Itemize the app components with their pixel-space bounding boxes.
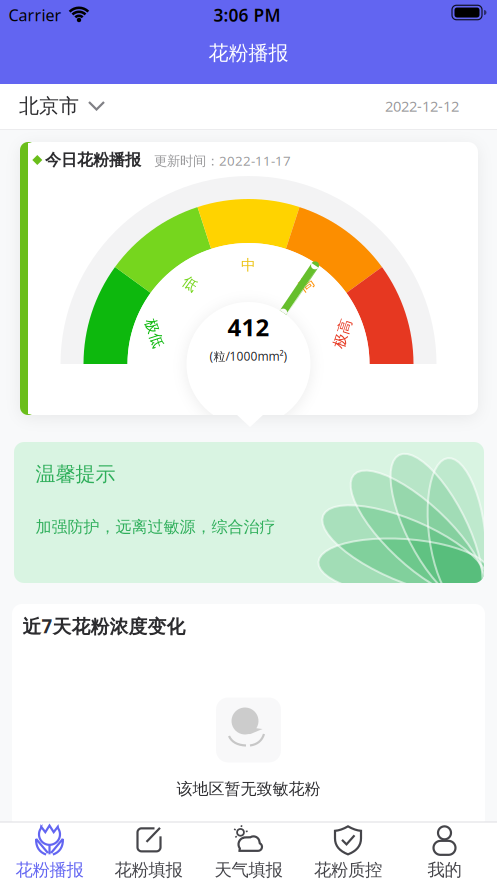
staticText: 花粉填报	[114, 859, 182, 881]
staticText: 412	[227, 311, 269, 343]
staticText: 极低	[139, 324, 169, 342]
button[interactable]: 我的	[396, 823, 492, 881]
staticText: 花粉质控	[314, 859, 382, 881]
staticText: 我的	[427, 859, 461, 881]
staticText: 花粉播报	[208, 41, 288, 65]
button[interactable]: 天气填报	[200, 823, 296, 881]
staticText: 温馨提示	[35, 462, 115, 486]
button[interactable]: 花粉播报	[1, 823, 97, 881]
staticText: 中	[241, 256, 256, 274]
staticText: Carrier	[8, 4, 61, 26]
staticText: 高	[299, 275, 314, 293]
staticText: (粒/1000mm²)	[209, 348, 287, 364]
staticText: 花粉播报	[15, 859, 83, 881]
button[interactable]: 北京市	[19, 94, 105, 118]
staticText: 今日花粉播报	[45, 150, 141, 170]
button[interactable]: 花粉质控	[300, 823, 396, 881]
button[interactable]: 花粉填报	[100, 823, 196, 881]
staticText: 加强防护，远离过敏源，综合治疗	[35, 517, 275, 537]
staticText: 更新时间：2022-11-17	[154, 152, 291, 169]
staticText: 2022-12-12	[385, 96, 459, 116]
staticText: 天气填报	[214, 859, 282, 881]
staticText: 近7天花粉浓度变化	[23, 614, 186, 638]
staticText: 极高	[328, 324, 358, 342]
staticText: 该地区暂无致敏花粉	[176, 779, 320, 799]
staticText: 3:06 PM	[213, 3, 280, 26]
staticText: 低	[183, 275, 198, 293]
staticText: 北京市	[19, 94, 79, 118]
